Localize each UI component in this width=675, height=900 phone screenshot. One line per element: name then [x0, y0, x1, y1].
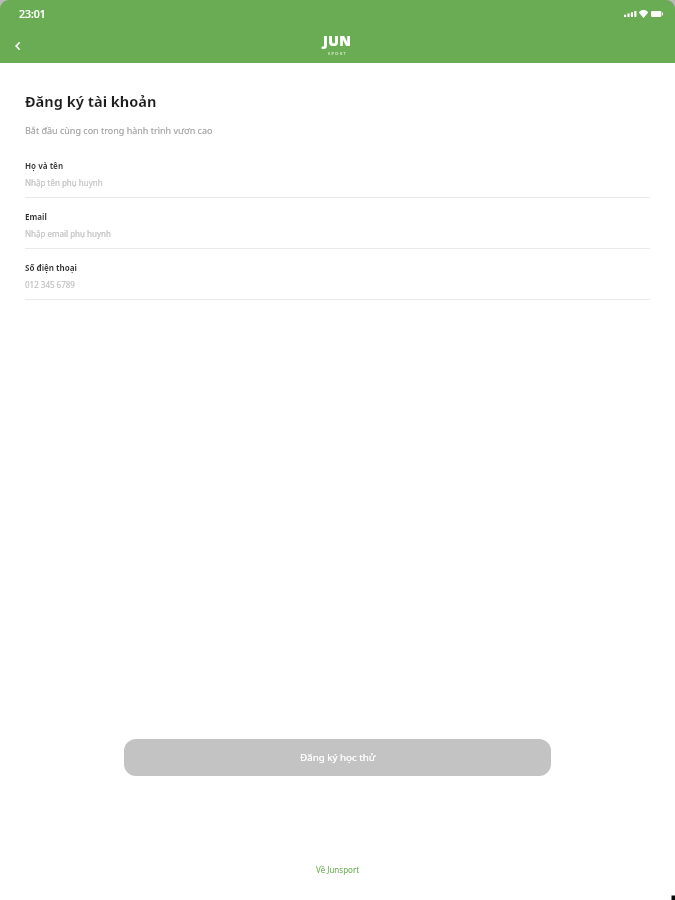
staticText: Nhập email phụ huynh	[25, 228, 111, 239]
button[interactable]: Đăng ký học thử	[124, 739, 551, 776]
staticText: Email	[25, 211, 47, 222]
staticText: SPORT	[328, 51, 348, 56]
button[interactable]: Về Junsport	[312, 860, 364, 879]
staticText: Đăng ký học thử	[300, 751, 376, 764]
staticText: JUN	[323, 31, 352, 50]
button[interactable]: Họ và tên	[25, 160, 650, 198]
staticText: Về Junsport	[316, 864, 360, 875]
staticText: Số điện thoại	[25, 262, 77, 273]
staticText: Đăng ký tài khoản	[25, 91, 157, 111]
staticText: Họ và tên	[25, 160, 64, 171]
staticText: Bắt đầu cùng con trong hành trình vươn c…	[25, 124, 213, 136]
button[interactable]: Back	[2, 30, 34, 62]
staticText: 012 345 6789	[25, 279, 75, 290]
button[interactable]: Số điện thoại	[25, 262, 650, 300]
staticText: 23:01	[19, 7, 46, 21]
staticText: Nhập tên phụ huynh	[25, 177, 103, 188]
button[interactable]: Email	[25, 211, 650, 249]
